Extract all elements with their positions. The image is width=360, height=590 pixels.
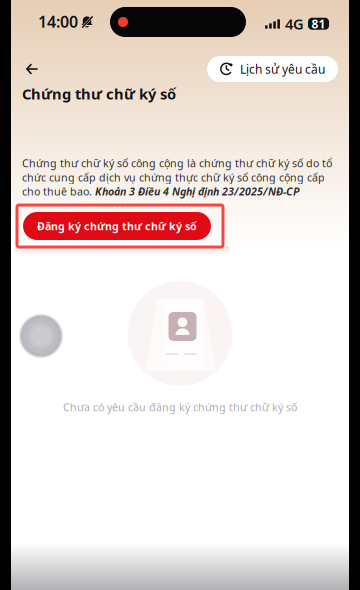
staticText: Chứng thư chữ ký số [22, 84, 176, 103]
staticText: Lịch sử yêu cầu [240, 61, 325, 77]
button[interactable]: Back [16, 54, 48, 84]
staticText: 4G [285, 14, 304, 33]
staticText: Chưa có yêu cầu đăng ký chứng thư chữ ký… [63, 400, 297, 414]
staticText: 81 [311, 16, 325, 32]
staticText: Chứng thư chữ ký số công cộng là chứng t… [22, 156, 332, 198]
staticText: 14:00 [38, 11, 78, 32]
button[interactable]: Đăng ký chứng thư chữ ký số [23, 212, 211, 240]
staticText: Đăng ký chứng thư chữ ký số [37, 219, 197, 233]
button[interactable]: Lịch sử yêu cầu [207, 56, 338, 82]
